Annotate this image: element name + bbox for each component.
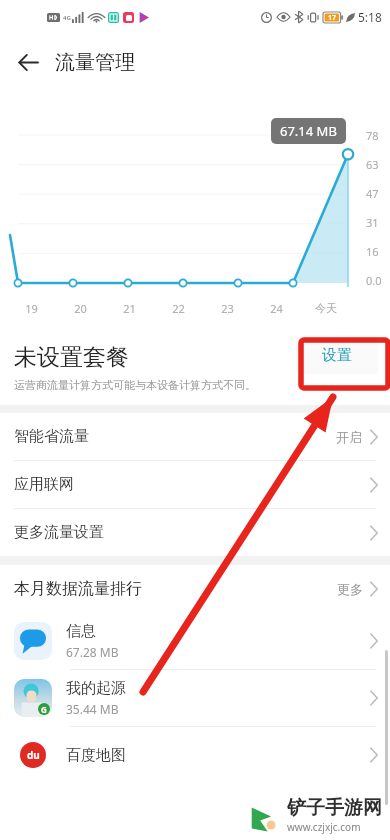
staticText: 35.44 MB: [66, 701, 119, 717]
staticText: 19: [25, 301, 38, 316]
staticText: 更多流量设置: [14, 523, 104, 542]
staticText: 67.28 MB: [66, 644, 119, 660]
button[interactable]: G: [0, 670, 390, 726]
staticText: 5:18: [358, 9, 382, 25]
staticText: 24: [270, 301, 283, 316]
staticText: 流量管理: [55, 50, 135, 75]
staticText: 63: [366, 157, 379, 172]
button[interactable]: 智能省流量: [0, 413, 390, 460]
staticText: 78: [366, 128, 379, 143]
staticText: 16: [366, 244, 379, 259]
button[interactable]: 信息: [0, 613, 390, 669]
button[interactable]: du: [0, 727, 390, 783]
staticText: 17: [328, 13, 337, 23]
staticText: 本月数据流量排行: [14, 579, 142, 599]
button[interactable]: 设置: [296, 336, 378, 374]
staticText: 0.0: [366, 273, 382, 288]
staticText: 31: [366, 215, 379, 230]
staticText: 21: [123, 301, 136, 316]
staticText: www.czjxjc.com: [287, 820, 361, 834]
button[interactable]: 更多流量设置: [0, 509, 390, 556]
staticText: 更多: [337, 581, 363, 597]
staticText: 百度地图: [66, 746, 126, 765]
staticText: 22: [172, 301, 185, 316]
staticText: 智能省流量: [14, 427, 89, 446]
staticText: 应用联网: [14, 475, 74, 494]
staticText: 今天: [315, 301, 337, 315]
staticText: 运营商流量计算方式可能与本设备计算方式不同。: [14, 378, 256, 392]
staticText: 4G: [63, 14, 71, 22]
staticText: 信息: [66, 622, 96, 641]
button[interactable]: 本月数据流量排行: [0, 565, 390, 613]
staticText: 开启: [336, 429, 362, 445]
staticText: G: [41, 704, 47, 715]
button[interactable]: Back: [8, 42, 48, 82]
staticText: 设置: [322, 346, 352, 365]
staticText: 47: [366, 186, 379, 201]
staticText: 67.14 MB: [280, 122, 337, 140]
button[interactable]: 应用联网: [0, 461, 390, 508]
staticText: du: [27, 748, 40, 762]
staticText: 铲子手游网: [287, 796, 382, 820]
staticText: 20: [74, 301, 87, 316]
staticText: 我的起源: [66, 679, 126, 698]
staticText: 未设置套餐: [14, 343, 129, 372]
staticText: 23: [221, 301, 234, 316]
